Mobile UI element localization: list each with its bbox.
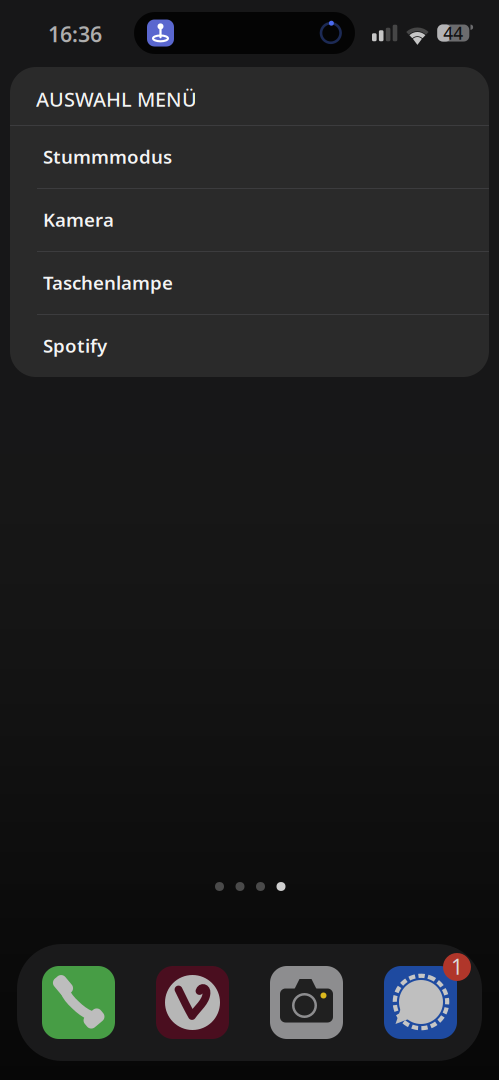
staticText: Taschenlampe (43, 270, 173, 295)
button[interactable]: Telefon (42, 966, 115, 1039)
button[interactable]: Live-Aktivität (134, 12, 355, 54)
staticText: AUSWAHL MENÜ (36, 86, 197, 112)
button[interactable]: Spotify (10, 314, 489, 377)
staticText: Stummmodus (43, 144, 172, 169)
staticText: Kamera (43, 207, 114, 232)
button[interactable]: Vivaldi (156, 966, 229, 1039)
button[interactable]: Stummmodus (10, 125, 489, 188)
staticText: 1 (451, 952, 463, 981)
staticText: 44 (443, 21, 463, 44)
staticText: Spotify (43, 333, 107, 358)
button[interactable]: Kamera (270, 966, 343, 1039)
button[interactable]: Signal (384, 966, 457, 1039)
staticText: 16:36 (48, 20, 102, 48)
button[interactable]: Taschenlampe (10, 251, 489, 314)
button[interactable]: Kamera (10, 188, 489, 251)
